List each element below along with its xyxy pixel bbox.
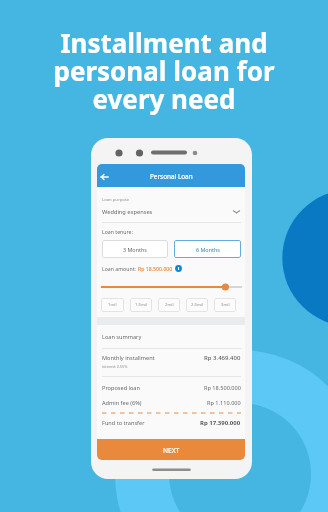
button[interactable]: Personal Loan xyxy=(97,164,245,189)
staticText: Loan summary xyxy=(102,333,142,341)
staticText: 3 Months xyxy=(123,246,147,253)
staticText: Rp 18.500.000 xyxy=(204,384,241,392)
staticText: Rp 3.469.400 xyxy=(204,354,241,362)
staticText: Wedding expenses xyxy=(102,208,153,216)
staticText: Proposed loan xyxy=(102,384,140,392)
staticText: 2mil xyxy=(165,302,174,308)
staticText: 1mil xyxy=(108,302,117,308)
button[interactable]: NEXT xyxy=(97,439,245,460)
staticText: Loan tenure: xyxy=(102,228,133,235)
staticText: Admin fee (6%) xyxy=(102,399,142,407)
button[interactable]: 2mil xyxy=(158,298,180,312)
staticText: Rp 18.500.000 xyxy=(138,265,173,272)
button[interactable]: 6 Months xyxy=(174,240,241,258)
staticText: Loan purpose xyxy=(102,197,130,203)
button[interactable]: 1.5mil xyxy=(130,298,152,312)
staticText: 1.5mil xyxy=(135,302,147,308)
button[interactable]: Back xyxy=(99,171,111,183)
staticText: Rp 17.390.000 xyxy=(200,419,241,427)
staticText: Personal Loan xyxy=(150,172,193,181)
staticText: Installment and personal loan for every … xyxy=(53,25,275,117)
staticText: 2.5mil xyxy=(191,302,203,308)
button[interactable]: 2.5mil xyxy=(186,298,208,312)
staticText: Monthly installment xyxy=(102,354,155,362)
button[interactable]: 1mil xyxy=(101,298,124,312)
staticText: interest 2.55% xyxy=(102,364,128,369)
staticText: Loan amount: xyxy=(102,265,138,272)
staticText: 6 Months xyxy=(196,246,220,253)
button[interactable]: 3mil xyxy=(214,298,236,312)
staticText: 3mil xyxy=(221,302,230,308)
staticText: Fund to transfer xyxy=(102,419,145,427)
staticText: Rp 1.110.000 xyxy=(207,399,241,407)
button[interactable]: 3 Months xyxy=(102,240,168,258)
staticText: NEXT xyxy=(163,446,180,455)
